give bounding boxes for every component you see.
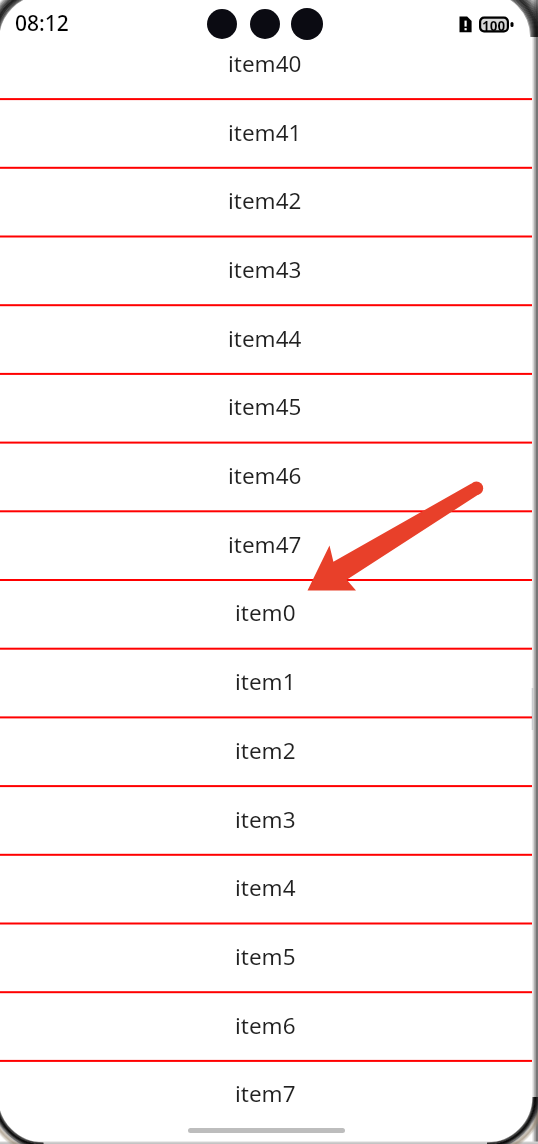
staticText: item43 — [228, 254, 302, 285]
staticText: item0 — [235, 597, 296, 628]
button[interactable]: item45 — [0, 372, 532, 441]
button[interactable]: item0 — [0, 578, 532, 647]
button[interactable]: item41 — [0, 97, 532, 166]
button[interactable]: item44 — [0, 304, 532, 373]
staticText: item47 — [228, 529, 302, 560]
staticText: item42 — [228, 185, 302, 216]
staticText: item40 — [228, 48, 302, 79]
button[interactable]: item6 — [0, 991, 532, 1060]
staticText: 100 — [482, 17, 506, 35]
button[interactable]: item5 — [0, 922, 532, 991]
staticText: item7 — [235, 1078, 296, 1109]
staticText: item4 — [235, 872, 296, 903]
button[interactable]: item1 — [0, 647, 532, 716]
staticText: item44 — [228, 323, 302, 354]
staticText: item41 — [228, 116, 302, 147]
button[interactable]: Home gesture handle — [188, 1128, 345, 1133]
staticText: item1 — [235, 666, 296, 697]
staticText: item6 — [235, 1010, 296, 1041]
button[interactable]: item46 — [0, 441, 532, 510]
button[interactable]: item43 — [0, 235, 532, 304]
button[interactable]: item42 — [0, 166, 532, 235]
staticText: item5 — [235, 941, 296, 972]
staticText: 08:12 — [15, 9, 69, 38]
staticText: item45 — [228, 391, 302, 422]
staticText: item46 — [228, 460, 302, 491]
staticText: item3 — [235, 803, 296, 834]
button[interactable]: item40 — [0, 29, 532, 98]
button[interactable]: item2 — [0, 716, 532, 785]
button[interactable]: item47 — [0, 510, 532, 579]
button[interactable]: item7 — [0, 1059, 532, 1128]
staticText: item2 — [235, 735, 296, 766]
button[interactable]: item3 — [0, 784, 532, 853]
button[interactable]: item4 — [0, 853, 532, 922]
